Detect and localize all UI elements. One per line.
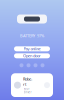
staticText: BATTERY 97%: [20, 33, 44, 38]
staticText: Robert: [23, 76, 32, 87]
staticText: Your driver: [23, 87, 31, 94]
staticText: Open door: [23, 53, 41, 58]
button[interactable]: Call: [44, 82, 50, 88]
button[interactable]: Open door: [14, 53, 50, 58]
staticText: Pay online: [23, 46, 40, 51]
button[interactable]: Quick action: [40, 63, 44, 67]
button[interactable]: Pay online: [14, 46, 50, 51]
button[interactable]: Quick action: [19, 63, 23, 67]
button[interactable]: Quick action: [26, 63, 30, 67]
button[interactable]: Quick action: [33, 63, 37, 67]
